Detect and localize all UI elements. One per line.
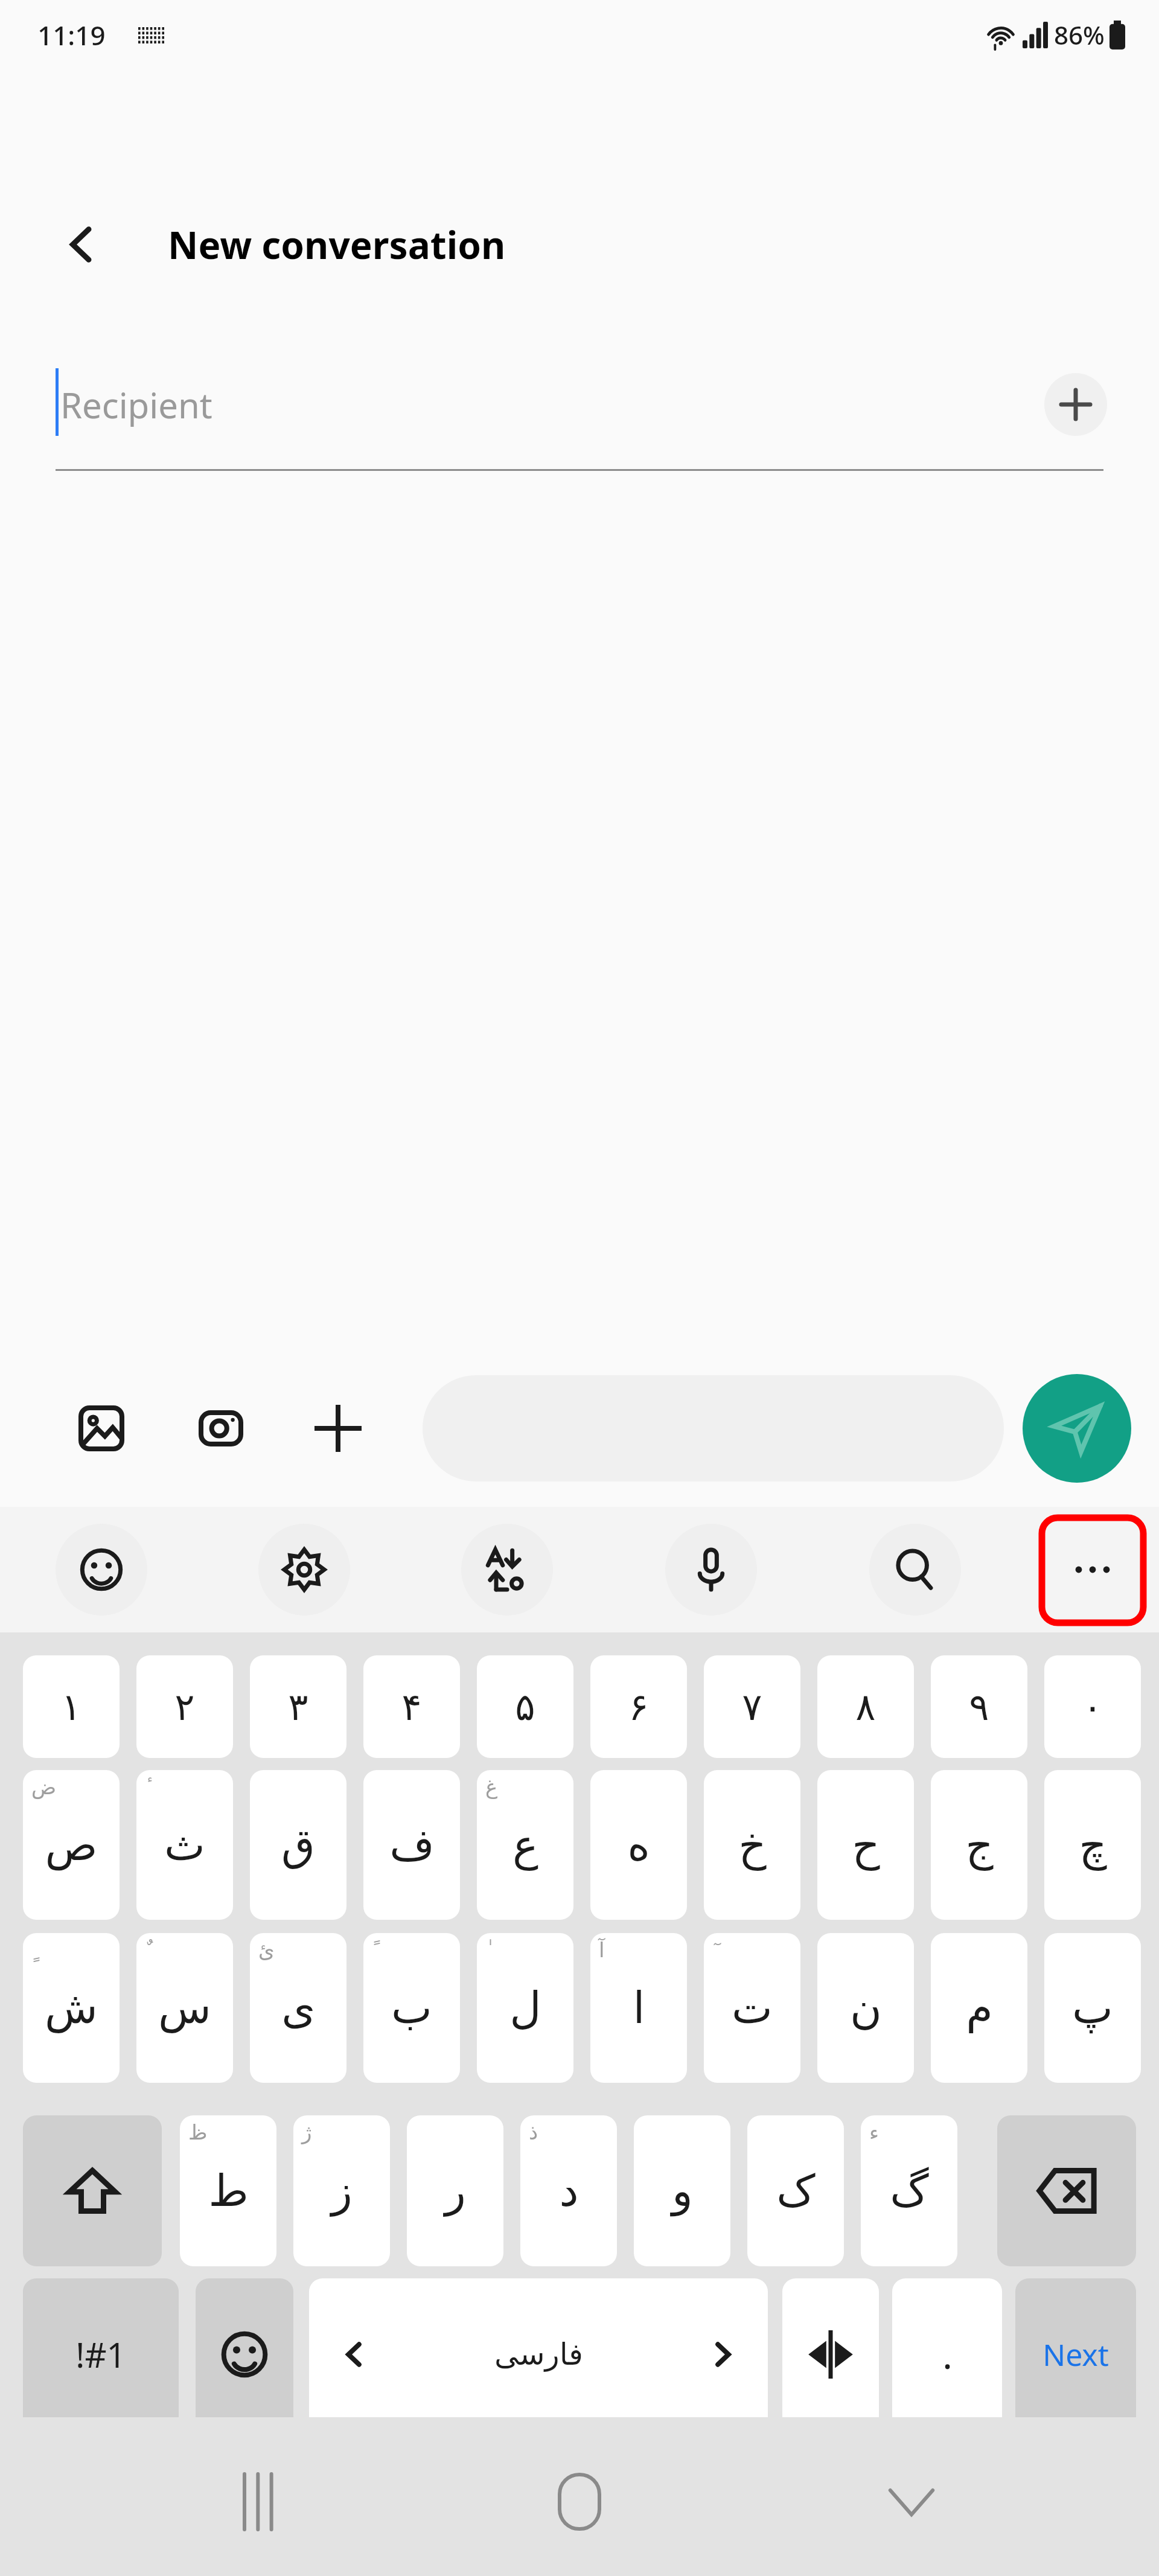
button[interactable]: پ — [1044, 1933, 1141, 2083]
button[interactable]: ۹ — [931, 1655, 1027, 1758]
staticText: غ — [485, 1775, 498, 1799]
button[interactable]: Hide keyboard — [863, 2453, 960, 2550]
button[interactable]: ذ — [520, 2115, 617, 2266]
button[interactable]: Gallery — [65, 1392, 138, 1465]
button[interactable]: ه — [590, 1770, 687, 1920]
staticText: ب — [391, 1983, 432, 2033]
button[interactable]: و — [634, 2115, 730, 2266]
staticText: و — [672, 2165, 693, 2216]
button[interactable]: ٌ — [136, 1933, 233, 2083]
staticText: ۹ — [969, 1685, 989, 1728]
staticText: س — [158, 1983, 211, 2033]
button[interactable]: ٔ — [136, 1770, 233, 1920]
button[interactable]: ۲ — [136, 1655, 233, 1758]
button[interactable]: Search — [869, 1524, 961, 1616]
staticText: م — [966, 1983, 993, 2033]
staticText: Next — [1042, 2334, 1109, 2375]
button[interactable]: Camera — [185, 1392, 257, 1465]
button[interactable]: Backspace — [997, 2115, 1136, 2266]
staticText: ۸ — [855, 1685, 876, 1728]
button[interactable]: More — [1047, 1524, 1138, 1616]
button[interactable]: Emoji — [196, 2278, 293, 2431]
staticText: فارسی — [494, 2337, 583, 2372]
button[interactable]: ک — [747, 2115, 844, 2266]
button[interactable]: ف — [363, 1770, 460, 1920]
staticText: ت — [732, 1983, 773, 2033]
button[interactable]: ۴ — [363, 1655, 460, 1758]
staticText: آ — [599, 1938, 605, 1962]
button[interactable]: Space, Persian — [309, 2278, 768, 2431]
staticText: ث — [164, 1820, 205, 1870]
staticText: ۲ — [174, 1685, 195, 1728]
button[interactable]: Settings — [258, 1524, 350, 1616]
button[interactable]: ۵ — [477, 1655, 573, 1758]
staticText: . — [942, 2329, 953, 2380]
staticText: ص — [45, 1820, 98, 1870]
button[interactable]: . — [892, 2278, 1002, 2431]
button[interactable]: ۸ — [817, 1655, 914, 1758]
button[interactable]: Send — [1023, 1374, 1131, 1483]
staticText: ۷ — [742, 1685, 762, 1728]
button[interactable]: Voice input — [665, 1524, 757, 1616]
button[interactable]: ض — [23, 1770, 120, 1920]
button[interactable]: More options — [302, 1392, 374, 1465]
staticText: ۱ — [61, 1685, 81, 1728]
button[interactable]: Recents — [211, 2453, 308, 2550]
button[interactable]: ظ — [180, 2115, 276, 2266]
staticText: د — [559, 2165, 579, 2216]
button[interactable]: Next — [1015, 2278, 1136, 2431]
staticText: 11:19 — [37, 17, 106, 53]
staticText: ۵ — [515, 1685, 535, 1728]
staticText: ۴ — [401, 1685, 422, 1728]
button[interactable]: ۱ — [23, 1655, 120, 1758]
button[interactable]: ۳ — [250, 1655, 346, 1758]
staticText: ف — [389, 1820, 435, 1870]
staticText: 86% — [1054, 18, 1105, 52]
staticText: ط — [208, 2165, 249, 2216]
button[interactable]: م — [931, 1933, 1027, 2083]
staticText: خ — [738, 1820, 767, 1870]
button[interactable]: Add recipient — [1044, 373, 1107, 436]
staticText: ز — [331, 2165, 353, 2216]
staticText: پ — [1072, 1983, 1113, 2033]
staticText: ق — [281, 1820, 315, 1870]
button[interactable]: ۶ — [590, 1655, 687, 1758]
staticText: ر — [445, 2165, 466, 2216]
button[interactable]: Shift — [23, 2115, 162, 2266]
button[interactable]: Back — [48, 211, 115, 278]
button[interactable]: ج — [931, 1770, 1027, 1920]
button[interactable]: ً — [363, 1933, 460, 2083]
button[interactable]: خ — [704, 1770, 800, 1920]
staticText: ض — [31, 1775, 57, 1799]
button[interactable]: ق — [250, 1770, 346, 1920]
staticText: گ — [890, 2165, 929, 2216]
button[interactable]: ٓ — [704, 1933, 800, 2083]
button[interactable]: چ — [1044, 1770, 1141, 1920]
button[interactable]: Translate — [461, 1524, 553, 1616]
button[interactable]: Home — [531, 2453, 628, 2550]
button[interactable]: ژ — [293, 2115, 390, 2266]
staticText: !#1 — [75, 2332, 126, 2377]
button[interactable]: ئ — [250, 1933, 346, 2083]
button[interactable]: !#1 — [23, 2278, 179, 2431]
button[interactable]: غ — [477, 1770, 573, 1920]
button[interactable]: ر — [407, 2115, 503, 2266]
button[interactable]: ء — [861, 2115, 957, 2266]
staticText: ۳ — [288, 1685, 308, 1728]
button[interactable]: آ — [590, 1933, 687, 2083]
staticText: ح — [852, 1820, 880, 1870]
staticText: ذ — [529, 2120, 538, 2144]
button[interactable]: ٍ — [23, 1933, 120, 2083]
button[interactable]: ح — [817, 1770, 914, 1920]
staticText: ه — [627, 1820, 650, 1870]
button[interactable]: Move cursor — [782, 2278, 879, 2431]
staticText: ا — [633, 1983, 645, 2033]
staticText: ج — [965, 1820, 994, 1870]
staticText: ل — [509, 1983, 541, 2033]
button[interactable]: Emoji — [56, 1524, 147, 1616]
button[interactable]: ۰ — [1044, 1655, 1141, 1758]
button[interactable]: ۷ — [704, 1655, 800, 1758]
button[interactable]: ٰ — [477, 1933, 573, 2083]
button[interactable]: ن — [817, 1933, 914, 2083]
